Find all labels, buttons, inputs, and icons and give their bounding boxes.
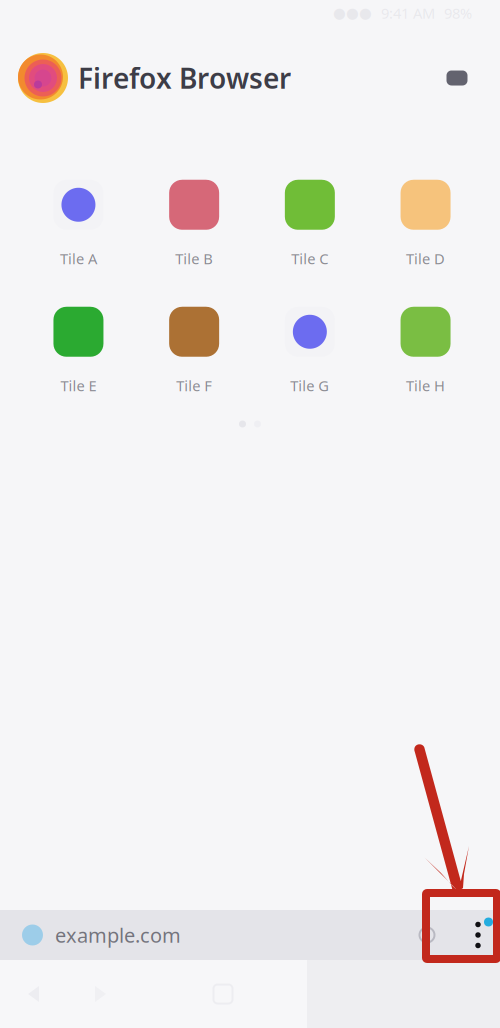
staticText: Tile E [60,376,96,395]
staticText: ●●● [333,5,372,21]
staticText: Tile G [290,376,329,395]
button[interactable]: Tile D [368,178,483,270]
button[interactable]: Tile F [136,305,252,397]
staticText: 9:41 AM [381,3,435,23]
button[interactable]: Menu [456,913,500,957]
staticText: Tile B [175,249,213,268]
staticText: Tile H [406,376,445,395]
staticText: 98% [444,3,472,23]
button[interactable]: Tile A [21,178,136,270]
staticText: Tile F [176,376,212,395]
button[interactable]: Tile H [368,305,483,397]
button[interactable]: Tile B [136,178,252,270]
staticText: Tile D [406,249,445,268]
button[interactable]: Tabs [436,57,478,99]
staticText: Tile C [291,249,328,268]
button[interactable]: Tile C [252,178,368,270]
staticText: example.com [55,922,181,948]
button[interactable]: Reload [410,913,444,957]
staticText: Firefox Browser [78,59,291,97]
staticText: Tile A [60,249,97,268]
button[interactable]: Tile E [21,305,136,397]
button[interactable]: Tile G [252,305,368,397]
